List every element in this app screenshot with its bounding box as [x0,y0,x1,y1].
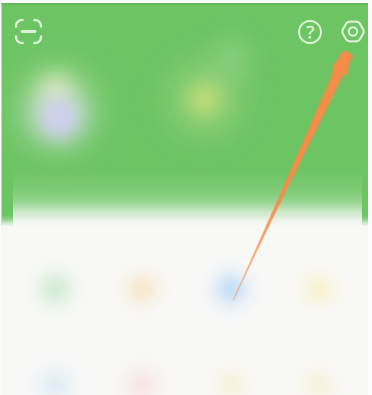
button[interactable]: Settings [332,11,372,52]
button[interactable]: Scan [7,11,50,52]
staticText: ? [306,19,315,44]
button[interactable]: Help [290,12,330,52]
